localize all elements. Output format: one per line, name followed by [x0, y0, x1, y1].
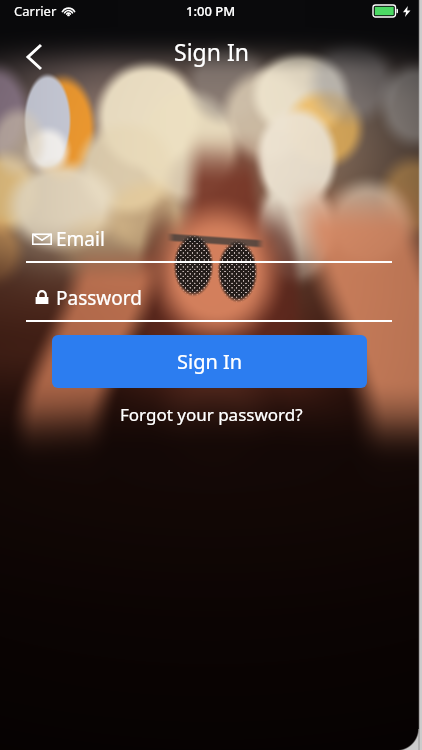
staticText: Password: [56, 285, 142, 311]
button[interactable]: Back: [14, 31, 54, 71]
staticText: Sign In: [174, 36, 249, 67]
button[interactable]: Email: [26, 226, 392, 263]
staticText: Carrier: [14, 2, 57, 20]
staticText: 1:00 PM: [186, 2, 236, 20]
button[interactable]: Sign In: [52, 335, 367, 388]
staticText: Sign In: [177, 348, 243, 375]
button[interactable]: Password: [26, 285, 392, 322]
staticText: Email: [56, 226, 105, 252]
button[interactable]: Forgot your password?: [112, 400, 311, 429]
